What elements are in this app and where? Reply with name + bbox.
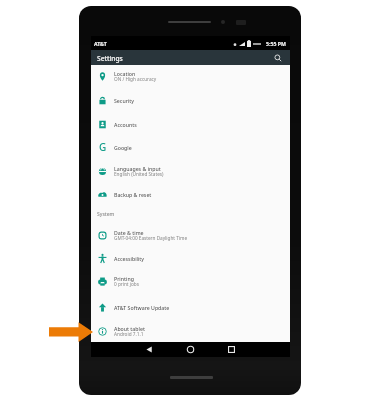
staticText: Accessibility [114,255,145,262]
staticText: Security [114,97,134,104]
button[interactable]: G [91,136,290,160]
staticText: System [97,211,115,218]
button[interactable]: Location [91,65,290,89]
staticText: 5:55 PM [266,40,286,47]
button[interactable]: Printing [91,270,290,294]
button[interactable]: Backup & reset [91,183,290,207]
staticText: Android 7.1.1 [114,331,144,337]
button[interactable]: Languages & input [91,160,290,184]
staticText: 0 print jobs [114,281,139,287]
staticText: ON / High accuracy [114,76,157,82]
button[interactable]: About tablet [91,320,290,344]
staticText: English (United States) [114,171,164,177]
button[interactable]: Security [91,89,290,113]
button[interactable]: AT&T Software Update [91,296,290,320]
staticText: Google [114,144,132,151]
staticText: Printing [114,275,134,282]
staticText: Settings [97,54,123,63]
staticText: Location [114,70,136,77]
button[interactable]: Home [187,342,194,357]
staticText: About tablet [114,325,145,332]
staticText: AT&T [94,40,107,47]
staticText: Languages & input [114,165,161,172]
button[interactable]: Accessibility [91,247,290,271]
staticText: Backup & reset [114,191,152,198]
staticText: Accounts [114,121,137,128]
button[interactable]: Accounts [91,113,290,137]
button[interactable]: Recents [228,342,235,357]
staticText: AT&T Software Update [114,304,170,311]
staticText: Date & time [114,229,144,236]
button[interactable]: Back [146,342,153,357]
button[interactable]: Search [271,51,285,65]
staticText: GMT-04:00 Eastern Daylight Time [114,235,188,241]
button[interactable]: Date & time [91,224,290,248]
staticText: G [99,140,107,154]
